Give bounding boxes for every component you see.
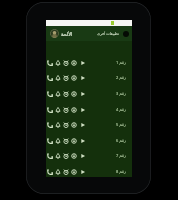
button[interactable]: Set as alarm [62,118,70,131]
button[interactable]: Set as alarm [62,149,70,162]
button[interactable]: Set as ringtone [46,147,132,163]
button[interactable]: Set as notification [54,134,62,147]
button[interactable]: Profile [50,29,59,38]
button[interactable]: Set as alarm [62,165,70,178]
button[interactable]: Set as alarm [62,134,70,147]
button[interactable]: Download [70,87,78,100]
button[interactable]: Set as ringtone [46,56,54,69]
button[interactable]: Set as notification [54,71,62,84]
button[interactable]: Set as ringtone [46,71,54,84]
button[interactable]: Set as ringtone [46,165,54,178]
button[interactable]: Set as ringtone [46,163,132,179]
button[interactable]: Download [70,71,78,84]
button[interactable]: Play [79,56,87,69]
button[interactable]: Set as notification [54,149,62,162]
button[interactable]: Play [79,134,87,147]
button[interactable]: Download [70,149,78,162]
button[interactable]: Play [79,118,87,131]
button[interactable]: Set as ringtone [46,103,54,116]
staticText: رقم 3 [116,91,126,96]
button[interactable]: Set as alarm [62,87,70,100]
button[interactable]: تطبيقات أخرى [97,31,119,36]
button[interactable]: Set as ringtone [46,132,132,148]
button[interactable]: Play [79,71,87,84]
button[interactable]: Download [70,165,78,178]
button[interactable]: Set as alarm [62,103,70,116]
staticText: رقم 5 [116,122,126,127]
staticText: رقم 4 [116,107,126,112]
button[interactable]: Download [70,103,78,116]
button[interactable]: Set as ringtone [46,85,132,101]
button[interactable]: Set as ringtone [46,54,132,70]
button[interactable]: Download [70,134,78,147]
staticText: رقم 2 [116,75,126,80]
button[interactable]: More options [123,31,129,37]
button[interactable]: Set as alarm [62,71,70,84]
button[interactable]: Set as alarm [62,56,70,69]
button[interactable]: Set as ringtone [46,134,54,147]
button[interactable]: Set as notification [54,56,62,69]
button[interactable]: Set as ringtone [46,87,54,100]
button[interactable]: Play [79,103,87,116]
button[interactable]: Set as notification [54,103,62,116]
staticText: رقم 8 [116,169,126,174]
staticText: رقم 6 [116,138,126,143]
button[interactable]: Play [79,165,87,178]
button[interactable]: Download [70,118,78,131]
button[interactable]: Set as notification [54,165,62,178]
button[interactable]: Play [79,87,87,100]
button[interactable]: Set as ringtone [46,116,132,132]
staticText: رقم 1 [116,60,126,65]
button[interactable]: Set as notification [54,118,62,131]
button[interactable]: Set as ringtone [46,69,132,85]
button[interactable]: Set as ringtone [46,118,54,131]
button[interactable]: Play [79,149,87,162]
button[interactable]: Set as ringtone [46,101,132,117]
staticText: الألحة [61,31,73,37]
button[interactable]: Set as notification [54,87,62,100]
staticText: رقم 7 [116,153,126,158]
button[interactable]: Set as ringtone [46,149,54,162]
button[interactable]: Download [70,56,78,69]
